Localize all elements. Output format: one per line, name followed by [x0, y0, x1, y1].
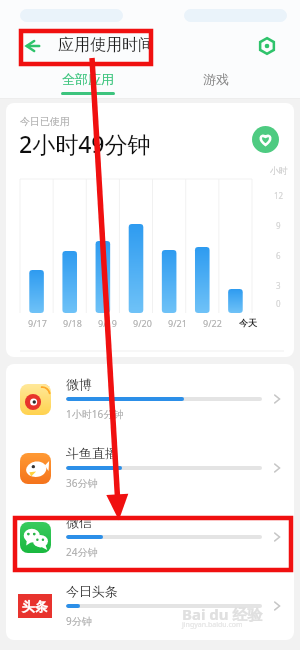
button[interactable]: Health [246, 122, 294, 156]
staticText: 24分钟 [66, 545, 98, 559]
button[interactable]: 微博 [6, 364, 294, 433]
staticText: 9/22 [203, 317, 222, 329]
staticText: 今日已使用 [20, 115, 70, 128]
staticText: 9/20 [133, 317, 152, 329]
button[interactable]: Settings [256, 35, 278, 57]
button[interactable]: Back [20, 34, 44, 58]
staticText: 今天 [239, 317, 257, 328]
staticText: 9/17 [28, 317, 47, 329]
staticText: 9 [276, 220, 281, 231]
staticText: 6 [276, 250, 281, 261]
staticText: 应用使用时间 [58, 35, 154, 55]
staticText: 小时 [270, 165, 288, 176]
button[interactable]: 头条 [6, 571, 294, 640]
staticText: 游戏 [203, 71, 229, 87]
button[interactable]: 斗鱼直播 [6, 433, 294, 502]
staticText: 1小时16分钟 [66, 407, 124, 421]
button[interactable]: 游戏 [158, 66, 274, 99]
staticText: 12 [274, 190, 284, 201]
staticText: 微博 [66, 376, 92, 392]
staticText: 36分钟 [66, 476, 98, 490]
button[interactable]: 全部应用 [26, 66, 150, 99]
staticText: 9/21 [168, 317, 187, 329]
staticText: 斗鱼直播 [66, 445, 118, 461]
staticText: 0 [276, 298, 281, 309]
staticText: 2小时49分钟 [19, 128, 151, 159]
staticText: Bai du 经验 [182, 604, 263, 624]
staticText: 9分钟 [66, 614, 92, 628]
staticText: 今日头条 [66, 583, 118, 599]
staticText: jingyan.baidu.com [182, 620, 243, 630]
staticText: 3 [276, 280, 281, 291]
staticText: 头条 [22, 598, 48, 614]
staticText: 全部应用 [62, 71, 114, 87]
staticText: 9/19 [98, 317, 117, 329]
staticText: 9/18 [63, 317, 82, 329]
button[interactable]: 微信 [6, 502, 294, 571]
staticText: 微信 [66, 514, 92, 530]
